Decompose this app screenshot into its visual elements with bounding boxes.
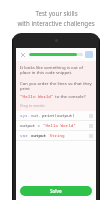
button[interactable]: Solve [20, 186, 92, 196]
staticText: var [20, 133, 31, 139]
staticText: output [31, 133, 47, 139]
button[interactable]: Hint [85, 51, 93, 58]
button[interactable]: Close [19, 51, 27, 59]
staticText: Test your skills [35, 9, 78, 17]
staticText: It looks like something is out of place … [20, 64, 92, 76]
staticText: String [47, 133, 65, 139]
button[interactable]: output = [16, 121, 96, 130]
staticText: "Hello World" [20, 93, 54, 99]
staticText: with interactive challenges [17, 19, 95, 27]
staticText: sys. [20, 113, 31, 119]
staticText: Can you order the lines so that they pri… [20, 80, 92, 92]
staticText: to the console? [54, 93, 86, 99]
button[interactable]: var [16, 131, 96, 140]
staticText: print(output) [42, 113, 75, 119]
staticText: output = [20, 123, 43, 129]
staticText: "Hello World" [43, 123, 76, 129]
staticText: out. [31, 113, 42, 119]
staticText: Drag to reorder [20, 103, 45, 108]
staticText: Solve [50, 188, 62, 194]
button[interactable]: sys. [16, 111, 96, 120]
